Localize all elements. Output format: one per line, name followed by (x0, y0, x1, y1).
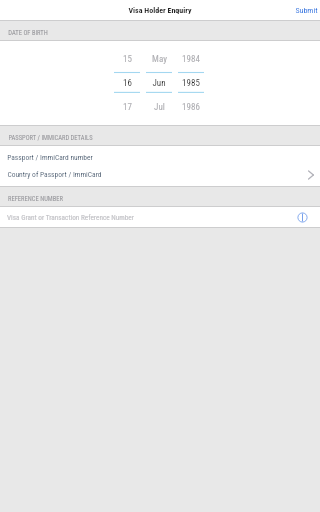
staticText: PASSPORT / IMMICARD DETAILS (8, 134, 93, 142)
button[interactable]: 17 (114, 95, 140, 119)
button[interactable]: May (146, 47, 172, 71)
staticText: Jun (152, 78, 166, 89)
button[interactable]: 15 (114, 47, 140, 71)
staticText: 1984 (182, 54, 200, 65)
staticText: 16 (123, 78, 132, 89)
staticText: Jul (154, 102, 165, 113)
staticText: Visa Holder Enquiry (128, 6, 192, 15)
button[interactable]: Country of Passport / ImmiCard (0, 166, 320, 183)
staticText: Country of Passport / ImmiCard (7, 170, 102, 179)
staticText: REFERENCE NUMBER (8, 195, 63, 203)
button[interactable]: 1985 (178, 71, 204, 95)
staticText: 17 (123, 102, 132, 113)
button[interactable]: Submit (283, 0, 320, 20)
staticText: May (152, 54, 167, 65)
staticText: Visa Grant or Transaction Reference Numb… (7, 213, 134, 221)
staticText: Submit (295, 6, 318, 15)
button[interactable]: Jul (146, 95, 172, 119)
button[interactable]: 1984 (178, 47, 204, 71)
button[interactable]: 16 (114, 71, 140, 95)
staticText: 15 (123, 54, 132, 65)
staticText: Passport / ImmiCard number (7, 153, 93, 162)
button[interactable]: Passport / ImmiCard number (0, 149, 320, 166)
staticText: 1986 (182, 102, 200, 113)
button[interactable]: Jun (146, 71, 172, 95)
button[interactable]: Information (296, 211, 308, 223)
staticText: DATE OF BIRTH (8, 29, 48, 37)
button[interactable]: Visa Grant or Transaction Reference Numb… (0, 207, 320, 227)
other: Open (304, 168, 318, 182)
staticText: 1985 (182, 78, 200, 89)
button[interactable]: 1986 (178, 95, 204, 119)
